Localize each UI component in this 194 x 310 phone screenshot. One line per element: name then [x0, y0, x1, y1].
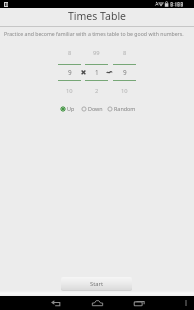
- staticText: Times Table: [68, 9, 127, 23]
- button[interactable]: Start: [61, 277, 132, 290]
- staticText: 8: [68, 49, 72, 57]
- button[interactable]: More options: [180, 296, 192, 310]
- button[interactable]: Up: [60, 103, 75, 115]
- staticText: 1: [95, 68, 99, 77]
- staticText: 10: [121, 87, 128, 95]
- button[interactable]: 8: [58, 48, 81, 95]
- staticText: 8: [123, 49, 127, 57]
- button[interactable]: 99: [85, 48, 108, 95]
- button[interactable]: Home: [86, 296, 108, 310]
- button[interactable]: Random: [107, 103, 136, 115]
- staticText: 10: [66, 87, 73, 95]
- button[interactable]: 8: [113, 48, 136, 95]
- staticText: 9: [123, 68, 127, 77]
- button[interactable]: Down: [81, 103, 103, 115]
- staticText: Down: [88, 105, 103, 112]
- staticText: Random: [114, 105, 136, 112]
- staticText: Up: [67, 105, 75, 112]
- staticText: Practice and become familiar with a time…: [4, 30, 184, 37]
- staticText: 2: [95, 87, 99, 95]
- button[interactable]: Back: [45, 296, 67, 310]
- staticText: Start: [90, 280, 104, 288]
- button[interactable]: Recent apps: [128, 296, 150, 310]
- staticText: 9: [68, 68, 72, 77]
- staticText: 99: [93, 49, 100, 57]
